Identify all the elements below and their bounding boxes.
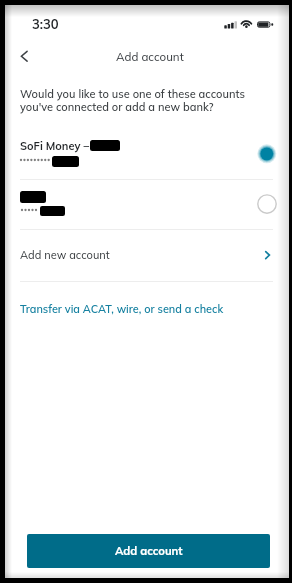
staticText: Add account — [115, 544, 183, 558]
staticText: Add new account — [20, 248, 110, 262]
button[interactable] — [5, 230, 289, 282]
button[interactable]: Back — [12, 44, 36, 68]
staticText: SoFi Money – — [20, 139, 89, 153]
button[interactable] — [5, 129, 289, 179]
button[interactable] — [5, 180, 289, 229]
staticText: 3:30 — [32, 16, 59, 32]
button[interactable]: Transfer via ACAT, wire, or send a check — [20, 302, 224, 320]
staticText: Would you like to use one of these accou… — [20, 87, 262, 114]
staticText: Add account — [116, 49, 184, 63]
staticText: Transfer via ACAT, wire, or send a check — [20, 302, 224, 316]
button[interactable]: Add account — [27, 534, 270, 568]
